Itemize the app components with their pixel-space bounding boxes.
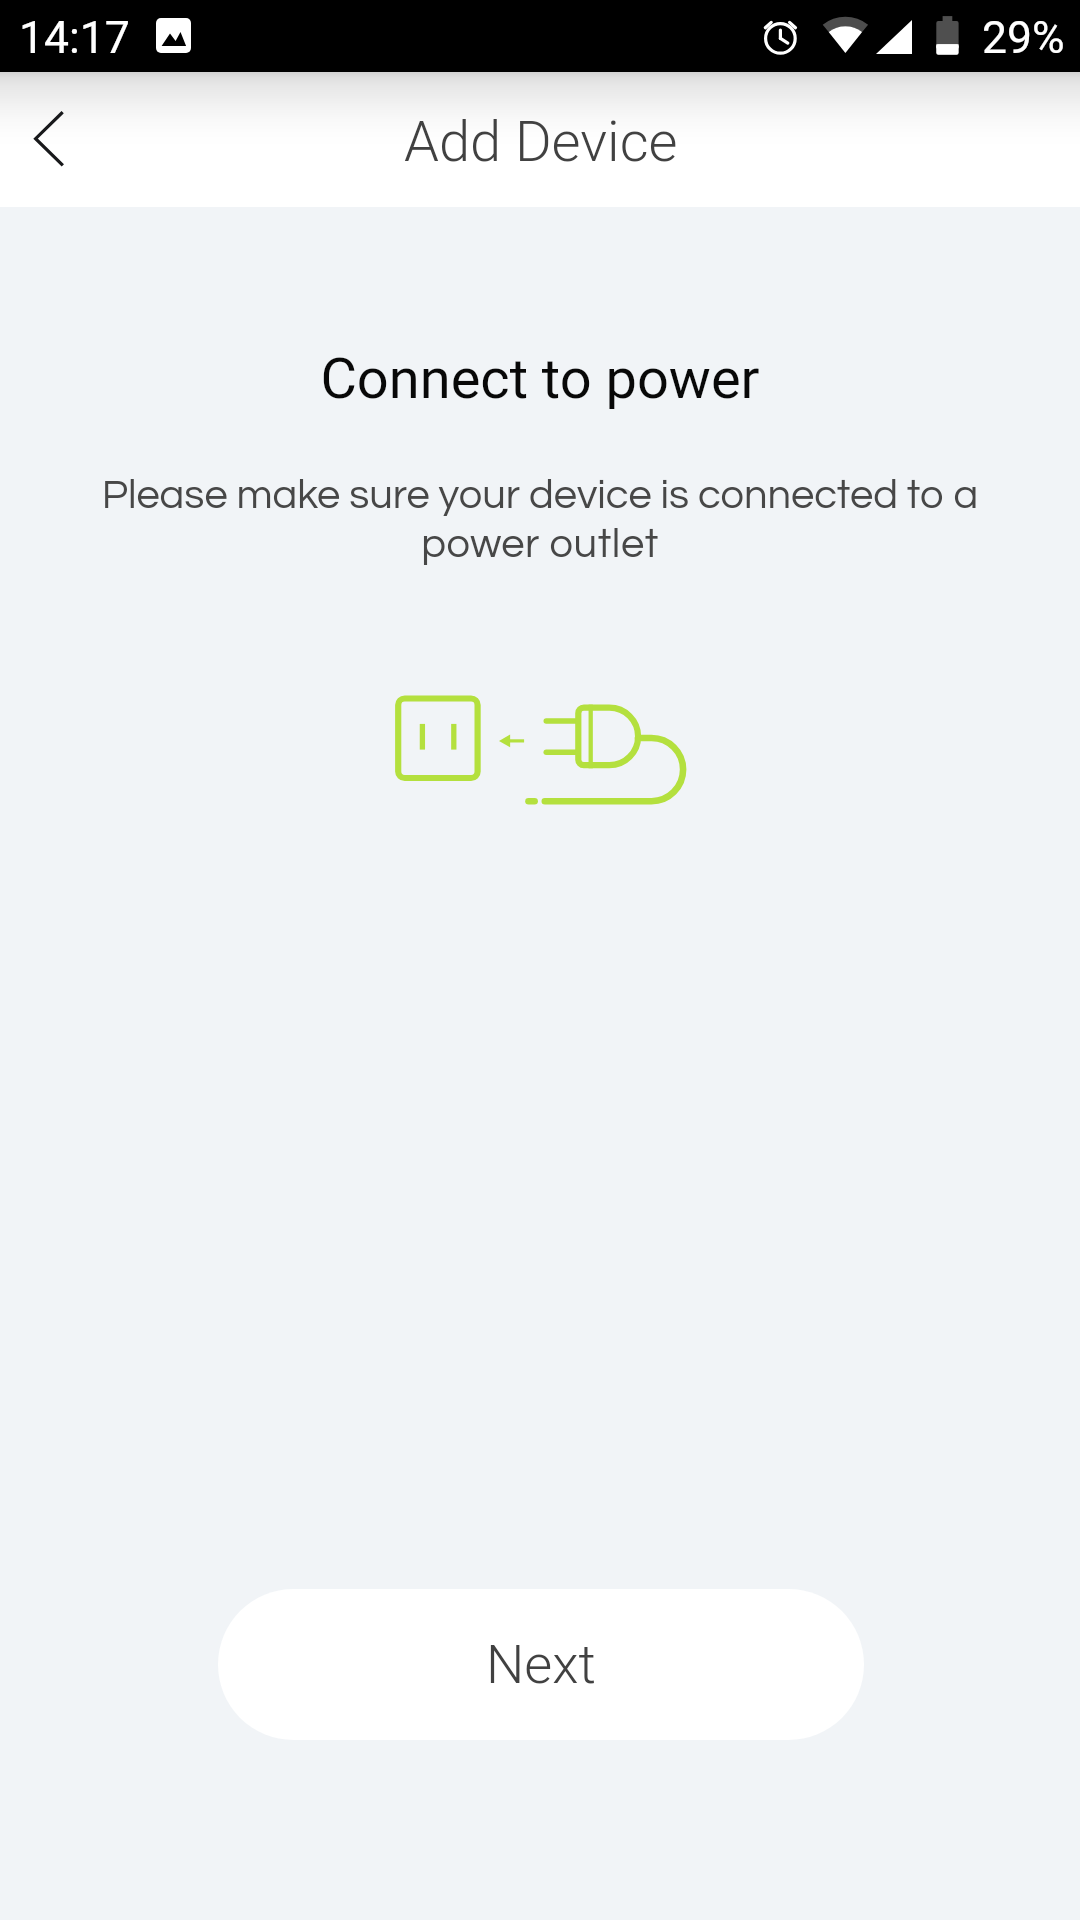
button[interactable]: Next: [218, 1589, 864, 1740]
staticText: Connect to power: [0, 346, 1080, 412]
button[interactable]: Back: [0, 72, 100, 207]
staticText: Add Device: [404, 109, 678, 175]
staticText: 29%: [982, 12, 1065, 64]
staticText: Next: [486, 1633, 596, 1696]
staticText: power outlet: [0, 523, 1080, 566]
staticText: 14:17: [19, 12, 130, 64]
staticText: Please make sure your device is connecte…: [0, 474, 1080, 517]
